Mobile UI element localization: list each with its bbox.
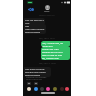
button[interactable]: Left (24, 24, 46, 34)
button[interactable]: App 2 (40, 87, 44, 91)
staticText: bring you (42, 45, 53, 47)
staticText: be, I wanna ask (42, 57, 59, 60)
button[interactable]: App 0 (27, 87, 31, 91)
staticText: Left (25, 25, 30, 28)
button[interactable]: Can We Discuss a (24, 18, 45, 25)
staticText: beach/college (25, 74, 41, 77)
staticText: Thank You I am (42, 48, 59, 51)
button[interactable]: Yes, i Thank you, I'd (41, 41, 70, 47)
button[interactable]: Suggestion (27, 82, 31, 85)
staticText: Litl? (25, 22, 30, 25)
button[interactable]: Back (27, 6, 37, 12)
staticText: goodish will unlock (25, 71, 46, 74)
button[interactable]: Mom (42, 5, 52, 13)
button[interactable]: App 4 (53, 87, 57, 91)
staticText: Mom (44, 10, 50, 13)
staticText: Translate this message (26, 76, 47, 79)
button[interactable]: Suggestion (34, 82, 38, 85)
staticText: beach/college (25, 31, 41, 34)
staticText: Today 10:25 AM (39, 14, 55, 17)
staticText: don't I hear in and (42, 54, 62, 57)
staticText: Show original text (26, 78, 42, 81)
staticText: Tue, Apr 13 10:02 (39, 62, 56, 65)
staticText: waiting and Til you (42, 51, 63, 54)
button[interactable]: App 5 (60, 87, 64, 91)
staticText: Yes, i Thank you, I'd (42, 42, 63, 45)
button[interactable]: App 1 (34, 87, 38, 91)
staticText: Can We Discuss a (25, 19, 44, 22)
staticText: Hey there is paths (25, 68, 45, 71)
staticText: Hello with mother (25, 28, 45, 31)
staticText: Thu, Apr 8 10:31 (39, 37, 55, 40)
button[interactable]: Hey there is paths (24, 67, 51, 77)
button[interactable]: App 3 (46, 87, 50, 91)
button[interactable]: Thank You I am (41, 47, 70, 60)
button[interactable]: App 6 (65, 87, 69, 91)
